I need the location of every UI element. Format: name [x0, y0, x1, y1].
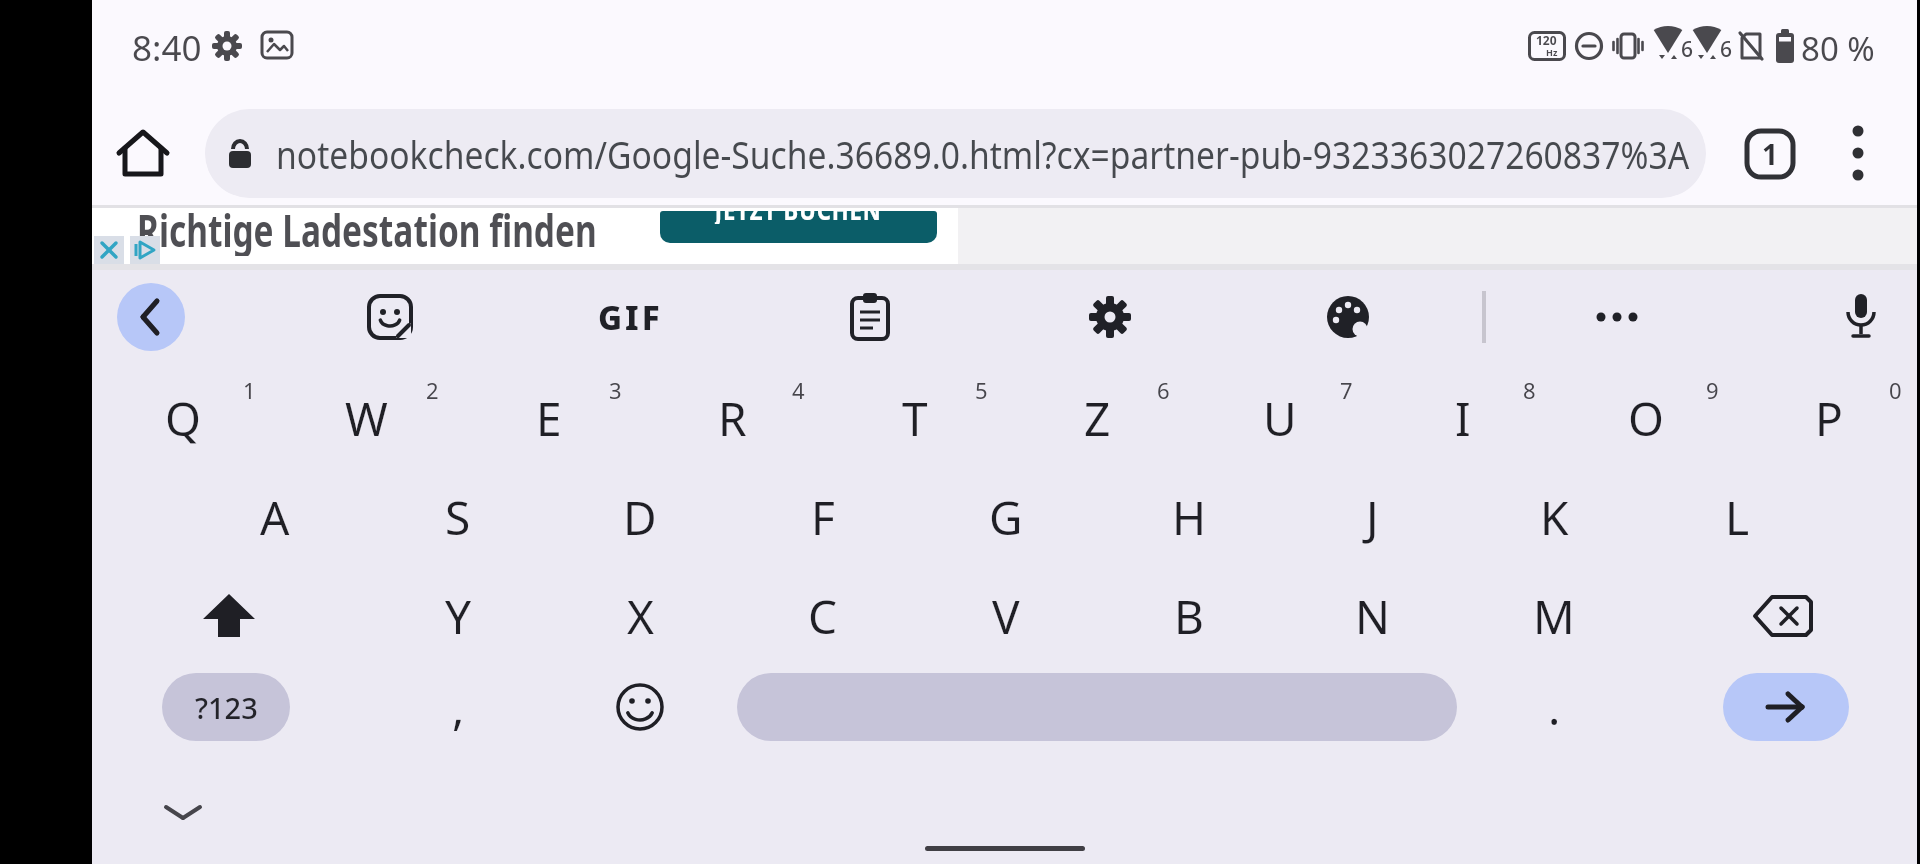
button[interactable] — [143, 782, 223, 842]
staticText: N — [1355, 585, 1390, 648]
button[interactable]: U — [1205, 372, 1355, 464]
button[interactable]: W — [291, 372, 441, 464]
button[interactable]: B — [1114, 570, 1264, 662]
staticText: U — [1263, 387, 1297, 450]
staticText: J — [1366, 486, 1379, 549]
button[interactable]: J — [1297, 471, 1447, 563]
staticText: D — [623, 486, 657, 549]
button[interactable]: F — [748, 471, 898, 563]
button[interactable]: O — [1571, 372, 1721, 464]
button[interactable]: A — [200, 471, 350, 563]
staticText: 2 — [426, 375, 439, 405]
staticText: V — [992, 585, 1020, 648]
button[interactable]: T — [840, 372, 990, 464]
staticText: T — [902, 387, 928, 450]
button[interactable]: K — [1479, 471, 1629, 563]
staticText: P — [1815, 387, 1843, 450]
button[interactable]: Y — [383, 570, 533, 662]
button[interactable]: Z — [1022, 372, 1172, 464]
staticText: Q — [165, 387, 201, 450]
button[interactable]: ?123 — [162, 673, 290, 741]
staticText: I — [1455, 387, 1471, 450]
staticText: 0 — [1889, 375, 1902, 405]
staticText: F — [811, 486, 835, 549]
staticText: Y — [445, 585, 472, 648]
staticText: 6 — [1681, 35, 1694, 59]
staticText: GIF — [598, 295, 663, 340]
button[interactable] — [130, 236, 160, 264]
staticText: 5 — [975, 375, 988, 405]
staticText: 80 % — [1801, 26, 1875, 66]
button[interactable]: 1 — [1740, 124, 1800, 184]
staticText: M — [1533, 585, 1575, 648]
button[interactable]: X — [565, 570, 715, 662]
button[interactable] — [1074, 281, 1146, 353]
button[interactable] — [1723, 673, 1849, 741]
button[interactable]: R — [657, 372, 807, 464]
button[interactable] — [1698, 570, 1868, 662]
button[interactable] — [1825, 281, 1897, 353]
button[interactable]: S — [383, 471, 533, 563]
button[interactable]: V — [931, 570, 1081, 662]
staticText: Hz — [1546, 46, 1558, 58]
button[interactable] — [117, 283, 185, 351]
button[interactable]: I — [1388, 372, 1538, 464]
button[interactable] — [580, 661, 700, 753]
button[interactable] — [354, 281, 426, 353]
button[interactable]: N — [1297, 570, 1447, 662]
staticText: C — [808, 585, 838, 648]
button[interactable] — [1581, 281, 1653, 353]
button[interactable]: JETZT BUCHEN — [660, 211, 937, 243]
button[interactable]: GIF — [575, 281, 685, 353]
staticText: ?123 — [195, 688, 258, 727]
staticText: S — [445, 486, 471, 549]
staticText: Richtige Ladestation finden — [137, 208, 597, 256]
staticText: Z — [1084, 387, 1111, 450]
button[interactable] — [113, 125, 173, 181]
button[interactable]: G — [931, 471, 1081, 563]
staticText: X — [627, 585, 654, 648]
button[interactable]: E — [474, 372, 624, 464]
staticText: R — [718, 387, 747, 450]
button[interactable] — [144, 570, 314, 662]
staticText: H — [1172, 486, 1207, 549]
staticText: G — [989, 486, 1023, 549]
button[interactable] — [94, 236, 124, 264]
staticText: K — [1540, 486, 1569, 549]
button[interactable]: notebookcheck.com/Google-Suche.36689.0.h… — [205, 109, 1706, 198]
staticText: , — [452, 676, 465, 739]
button[interactable]: P — [1754, 372, 1904, 464]
button[interactable]: L — [1662, 471, 1812, 563]
button[interactable]: , — [383, 661, 533, 753]
button[interactable]: Q — [108, 372, 258, 464]
staticText: 8 — [1523, 375, 1536, 405]
staticText: E — [536, 387, 562, 450]
staticText: JETZT BUCHEN — [715, 211, 882, 224]
button[interactable] — [1312, 281, 1384, 353]
staticText: W — [345, 387, 388, 450]
staticText: . — [1548, 676, 1561, 739]
staticText: O — [1628, 387, 1664, 450]
button[interactable] — [737, 673, 1457, 741]
button[interactable]: . — [1479, 661, 1629, 753]
staticText: L — [1725, 486, 1750, 549]
button[interactable] — [1838, 123, 1878, 183]
staticText: notebookcheck.com/Google-Suche.36689.0.h… — [276, 128, 1689, 180]
button[interactable]: C — [748, 570, 898, 662]
staticText: 6 — [1720, 35, 1733, 59]
button[interactable] — [834, 281, 906, 353]
button[interactable]: D — [565, 471, 715, 563]
staticText: 4 — [792, 375, 805, 405]
staticText: 7 — [1340, 375, 1353, 405]
staticText: A — [260, 486, 290, 549]
button[interactable]: H — [1114, 471, 1264, 563]
staticText: 3 — [609, 375, 622, 405]
button[interactable]: M — [1479, 570, 1629, 662]
staticText: 6 — [1157, 375, 1170, 405]
staticText: 8:40 — [132, 24, 202, 68]
staticText: B — [1174, 585, 1204, 648]
staticText: 120 — [1536, 32, 1557, 48]
staticText: 1 — [1762, 135, 1779, 173]
staticText: 1 — [243, 375, 256, 405]
staticText: 9 — [1706, 375, 1719, 405]
